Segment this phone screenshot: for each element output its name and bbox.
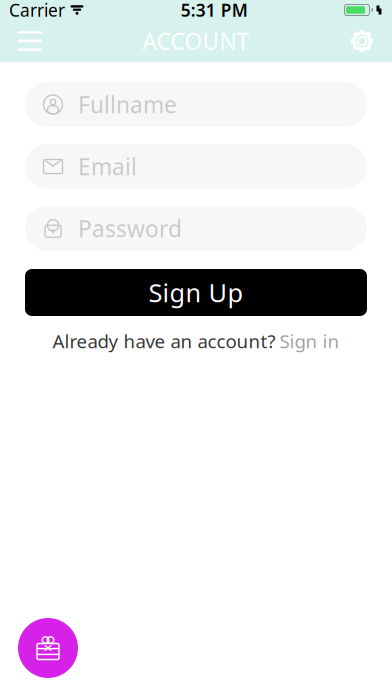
staticText: Fullname [78,89,177,119]
staticText: Sign in [279,329,339,353]
button[interactable]: Gifts [18,618,78,678]
staticText: Carrier [9,0,65,21]
staticText: Password [78,213,182,243]
staticText: 5:31 PM [181,0,248,21]
staticText: Sign Up [148,276,243,309]
staticText: Email [78,151,137,181]
button[interactable]: Sign Up [25,269,367,316]
button[interactable]: Settings [340,20,384,62]
button[interactable]: Menu [8,20,52,62]
staticText: Already have an account? [52,329,275,353]
staticText: ACCOUNT [142,26,249,56]
button[interactable]: Already have an account? [25,327,367,355]
